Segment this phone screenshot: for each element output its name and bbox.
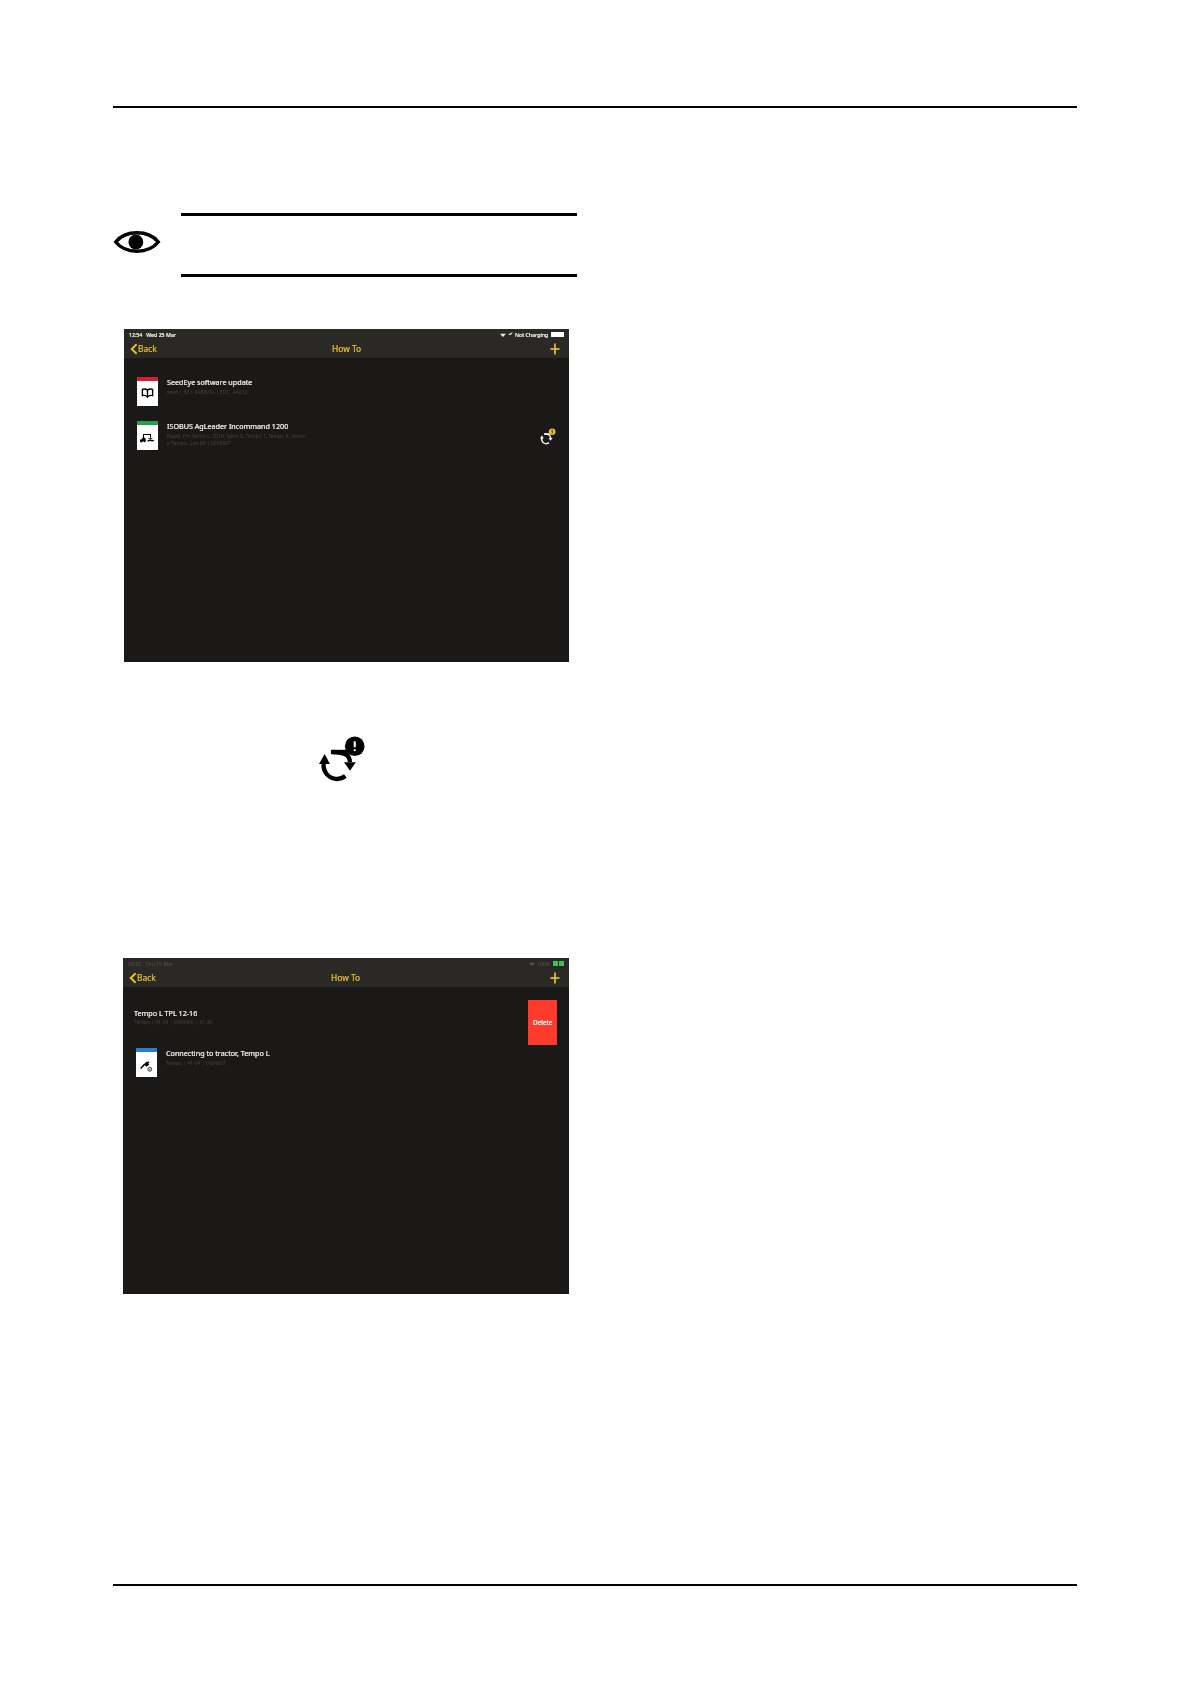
staticText: How To — [331, 972, 361, 983]
staticText: Not Charging — [515, 331, 549, 338]
staticText: ISOBUS AgLeader Incommand 1200 — [167, 421, 289, 431]
staticText: Tempo L TPL 12-16 — [134, 1008, 198, 1018]
button[interactable]: Connecting to tractor, Tempo L — [123, 1040, 569, 1084]
staticText: How To — [332, 343, 362, 354]
button[interactable]: Tempo L TPL 12-16 — [123, 995, 569, 1040]
staticText: Tempo | 41-04 | 0004466 | 31-30 — [134, 1019, 213, 1026]
button[interactable]: Back — [130, 341, 158, 356]
staticText: Connecting to tractor, Tempo L — [166, 1048, 270, 1058]
staticText: 100% — [537, 960, 551, 967]
button[interactable]: ISOBUS AgLeader Incommand 1200 — [124, 413, 569, 457]
button[interactable]: Back — [129, 970, 157, 985]
staticText: Rapid, H+, Vento L, 2019, Spirit X, Temp… — [167, 433, 305, 447]
button[interactable]: SeedEye software update — [124, 369, 569, 413]
staticText: Tempo | 41-04 | 000480T — [166, 1060, 226, 1067]
staticText: 12:54 Wed 25 Mar — [129, 331, 176, 338]
staticText: Back — [138, 343, 157, 354]
button[interactable]: Add — [547, 970, 563, 986]
staticText: Back — [137, 972, 156, 983]
button[interactable]: Delete — [528, 1000, 557, 1045]
staticText: SeedEye software update — [167, 377, 253, 387]
staticText: seed | 50 | KSEEPTu | EDS 44232 — [167, 389, 248, 396]
staticText: Delete — [533, 1018, 553, 1027]
button[interactable]: Add — [547, 341, 563, 357]
staticText: 09:32 Thu 19 Mar — [128, 960, 174, 967]
button[interactable]: Sync — [536, 424, 559, 447]
